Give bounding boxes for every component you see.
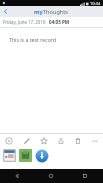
button[interactable]: Share [52, 134, 69, 147]
button[interactable]: Play [0, 134, 18, 147]
button[interactable]: Image attachment [3, 149, 16, 162]
button[interactable]: Green attachment [19, 149, 32, 162]
button[interactable]: Back [0, 6, 11, 17]
staticText: 10:34 [90, 1, 101, 6]
button[interactable]: Download attachment [35, 149, 49, 163]
staticText: Thoughts [43, 8, 69, 16]
button[interactable]: Delete [69, 134, 86, 147]
button[interactable]: More options [86, 134, 103, 147]
button[interactable]: Edit [18, 134, 35, 147]
button[interactable]: Favorite [35, 134, 52, 147]
staticText: my [34, 8, 43, 16]
staticText: This is a test record [9, 36, 57, 43]
button[interactable]: Back [10, 169, 24, 183]
staticText: 04:05 PM [49, 19, 70, 25]
button[interactable]: Home [44, 169, 58, 183]
staticText: Friday, June 17, 2016 [3, 19, 46, 25]
button[interactable]: Recent apps [78, 169, 92, 183]
